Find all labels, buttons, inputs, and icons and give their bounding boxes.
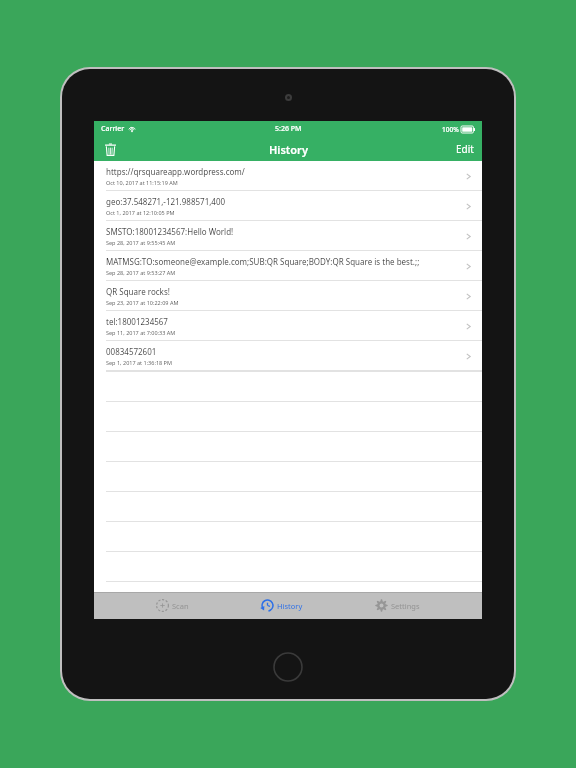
button[interactable]: tel:18001234567	[94, 311, 482, 341]
staticText: tel:18001234567	[106, 316, 168, 327]
staticText: Sep 23, 2017 at 10:22:09 AM	[106, 299, 179, 306]
button[interactable]: History	[251, 592, 313, 619]
button[interactable]: https://qrsquareapp.wordpress.com/	[94, 161, 482, 191]
staticText: Sep 1, 2017 at 1:36:18 PM	[106, 359, 172, 366]
staticText: Oct 1, 2017 at 12:10:05 PM	[106, 209, 175, 216]
staticText: MATMSG:TO:someone@example.com;SUB:QR Squ…	[106, 256, 420, 267]
staticText: Oct 10, 2017 at 11:15:19 AM	[106, 179, 178, 186]
button[interactable]: geo:37.548271,-121.988571,400	[94, 191, 482, 221]
button[interactable]: Delete	[98, 137, 122, 161]
button[interactable]: QR Square rocks!	[94, 281, 482, 311]
staticText: QR Square rocks!	[106, 286, 170, 297]
staticText: geo:37.548271,-121.988571,400	[106, 196, 226, 207]
button[interactable]: Scan	[146, 592, 199, 619]
button[interactable]: Edit	[448, 137, 482, 161]
button[interactable]: 00834572601	[94, 341, 482, 371]
staticText: https://qrsquareapp.wordpress.com/	[106, 166, 245, 177]
staticText: Carrier	[101, 124, 125, 134]
staticText: SMSTO:18001234567:Hello World!	[106, 226, 234, 237]
staticText: Sep 11, 2017 at 7:00:33 AM	[106, 329, 176, 336]
staticText: Sep 28, 2017 at 9:53:27 AM	[106, 269, 176, 276]
staticText: Edit	[456, 142, 474, 156]
button[interactable]: SMSTO:18001234567:Hello World!	[94, 221, 482, 251]
staticText: 100%	[442, 125, 459, 134]
staticText: Sep 28, 2017 at 9:55:45 AM	[106, 239, 176, 246]
staticText: 5:26 PM	[275, 124, 302, 134]
button[interactable]: MATMSG:TO:someone@example.com;SUB:QR Squ…	[94, 251, 482, 281]
staticText: Settings	[391, 601, 420, 611]
button[interactable]: Settings	[365, 592, 430, 619]
staticText: History	[269, 142, 308, 157]
staticText: History	[277, 601, 303, 611]
staticText: Scan	[172, 601, 189, 611]
staticText: 00834572601	[106, 346, 157, 357]
